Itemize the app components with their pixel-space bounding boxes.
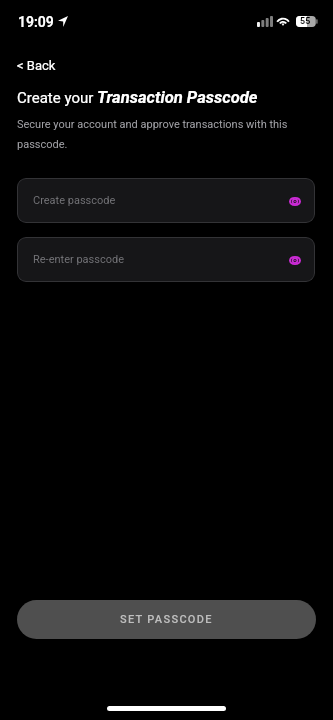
- staticText: 55: [300, 16, 311, 27]
- staticText: Create your Transaction Passcode: [17, 88, 258, 107]
- button[interactable]: Re-enter passcode: [17, 237, 315, 282]
- button[interactable]: SET PASSCODE: [17, 600, 316, 639]
- staticText: 19:09: [18, 14, 54, 30]
- staticText: Create passcode: [33, 194, 116, 207]
- staticText: Secure your account and approve transact…: [17, 118, 299, 151]
- button[interactable]: < Back: [11, 53, 62, 78]
- staticText: Re-enter passcode: [33, 253, 125, 266]
- button[interactable]: Show passcode: [283, 248, 307, 272]
- staticText: SET PASSCODE: [120, 613, 213, 626]
- staticText: < Back: [17, 58, 56, 73]
- button[interactable]: Create passcode: [17, 178, 315, 223]
- button[interactable]: Show passcode: [283, 189, 307, 213]
